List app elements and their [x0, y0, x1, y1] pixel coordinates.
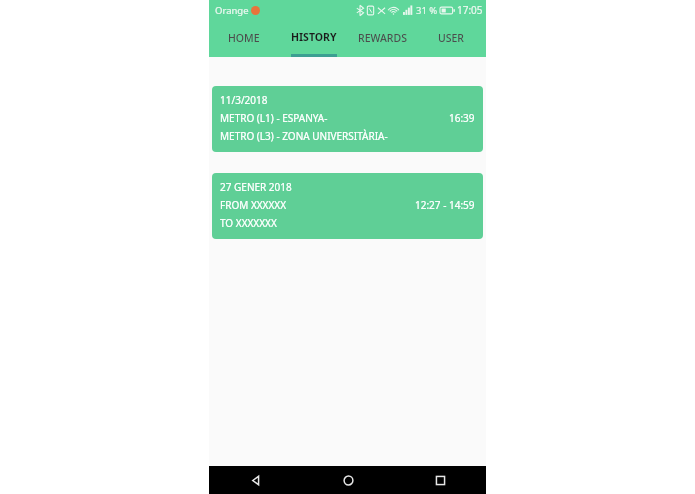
staticText: 31 % [416, 4, 438, 17]
button[interactable]: HOME [209, 20, 279, 57]
button[interactable]: Back [209, 466, 302, 494]
button[interactable]: HISTORY [279, 20, 348, 57]
staticText: 16:39 [449, 111, 475, 125]
staticText: TO XXXXXXX [220, 216, 277, 230]
staticText: 27 GENER 2018 [220, 180, 292, 194]
staticText: USER [438, 31, 465, 45]
button[interactable]: 27 GENER 2018 [212, 173, 483, 239]
staticText: METRO (L1) - ESPANYA- [220, 111, 328, 125]
staticText: HOME [228, 31, 260, 45]
staticText: 11/3/2018 [220, 93, 268, 107]
button[interactable]: REWARDS [348, 20, 417, 57]
staticText: FROM XXXXXX [220, 198, 287, 212]
staticText: 17:05 [457, 3, 483, 17]
staticText: 12:27 - 14:59 [415, 198, 475, 212]
button[interactable]: Home [302, 466, 394, 494]
staticText: REWARDS [358, 31, 407, 45]
button[interactable]: Recent apps [394, 466, 486, 494]
staticText: HISTORY [291, 30, 337, 44]
staticText: Orange [215, 4, 249, 17]
staticText: METRO (L3) - ZONA UNIVERSITÀRIA- [220, 129, 388, 143]
button[interactable]: 11/3/2018 [212, 86, 483, 152]
button[interactable]: USER [417, 20, 486, 57]
